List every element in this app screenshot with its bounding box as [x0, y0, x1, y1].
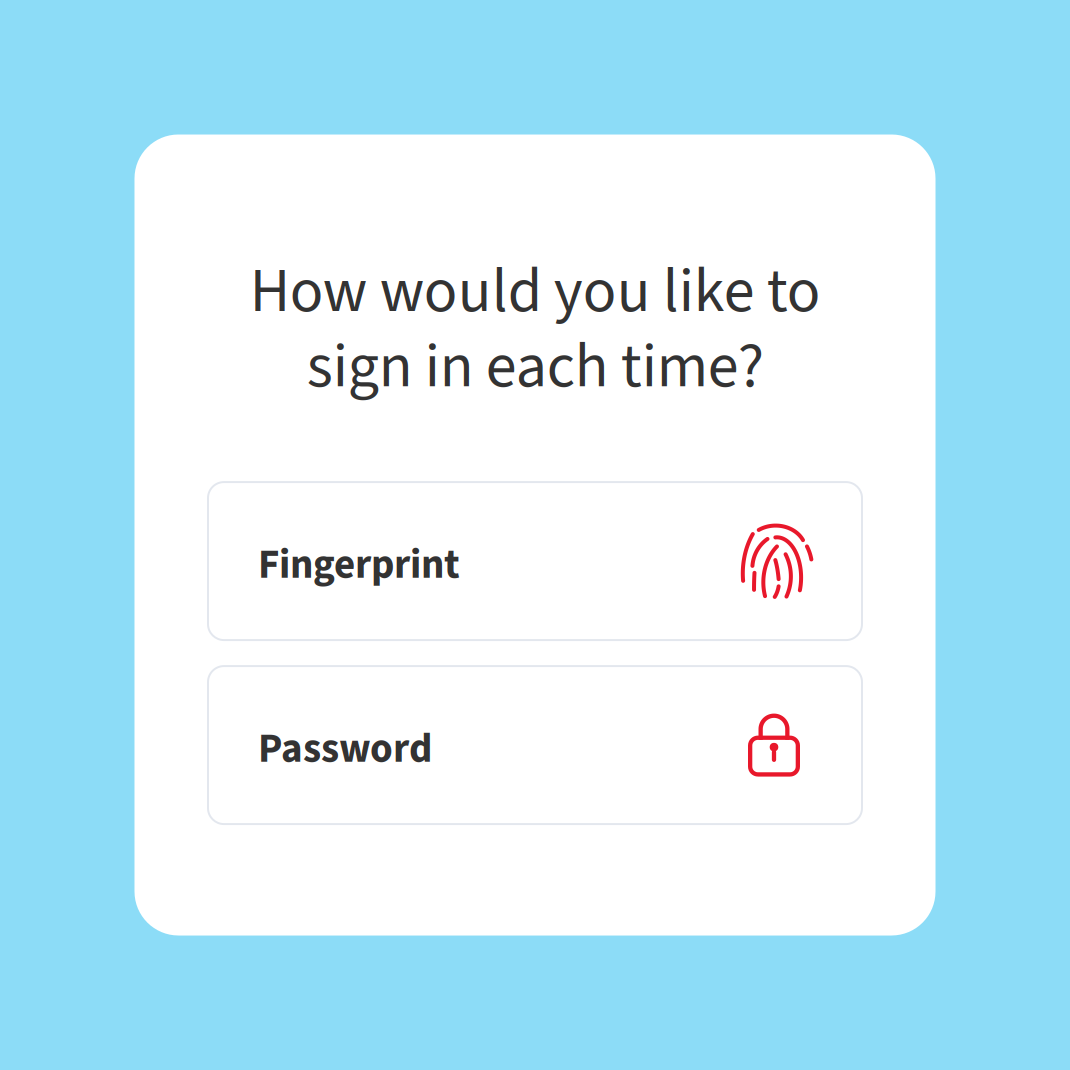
button[interactable]: Password	[208, 666, 862, 824]
staticText: How would you like to sign in each time?	[249, 247, 820, 411]
staticText: Password	[258, 720, 432, 778]
staticText: Fingerprint	[258, 536, 460, 594]
button[interactable]: Fingerprint	[208, 482, 862, 640]
